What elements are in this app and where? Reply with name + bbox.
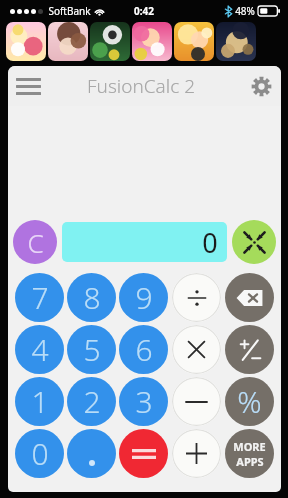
button[interactable]: Plus — [172, 429, 221, 478]
staticText: 4 — [31, 329, 49, 370]
button[interactable]: C — [13, 220, 57, 264]
button[interactable]: Settings — [241, 66, 281, 106]
staticText: APPS — [236, 454, 264, 469]
button[interactable]: 0 — [15, 429, 64, 478]
button[interactable]: App 1 — [6, 22, 46, 61]
button[interactable]: % — [225, 377, 274, 426]
button[interactable]: 4 — [15, 325, 64, 374]
staticText: 48% — [235, 4, 255, 18]
button[interactable]: 6 — [119, 325, 168, 374]
button[interactable]: 8 — [67, 273, 116, 322]
staticText: % — [237, 381, 262, 422]
button[interactable]: Equals — [119, 429, 168, 478]
staticText: MORE — [233, 439, 266, 454]
button[interactable]: App 4 — [132, 22, 172, 61]
button[interactable]: More apps — [225, 429, 274, 478]
staticText: SoftBank — [48, 4, 91, 18]
staticText: 0 — [31, 433, 49, 474]
button[interactable]: 9 — [119, 273, 168, 322]
button[interactable]: Menu — [8, 66, 48, 106]
staticText: FusionCalc 2 — [87, 73, 195, 99]
button[interactable]: . — [67, 429, 116, 478]
staticText: 8 — [83, 277, 101, 318]
button[interactable]: 7 — [15, 273, 64, 322]
button[interactable]: 0 — [62, 222, 227, 262]
staticText: C — [27, 225, 44, 260]
button[interactable]: App 3 — [90, 22, 130, 61]
staticText: 9 — [135, 277, 153, 318]
staticText: 0:42 — [134, 4, 154, 18]
button[interactable]: App 2 — [48, 22, 88, 61]
button[interactable]: App 5 — [174, 22, 214, 61]
button[interactable]: 3 — [119, 377, 168, 426]
button[interactable]: Collapse — [232, 220, 276, 264]
staticText: 5 — [83, 329, 101, 370]
staticText: 0 — [202, 224, 218, 261]
button[interactable]: 5 — [67, 325, 116, 374]
button[interactable]: Plus minus — [225, 325, 274, 374]
staticText: 6 — [135, 329, 153, 370]
button[interactable]: App 6 — [216, 22, 256, 61]
button[interactable]: 1 — [15, 377, 64, 426]
staticText: 2 — [83, 381, 101, 422]
button[interactable]: Minus — [172, 377, 221, 426]
button[interactable]: Divide — [172, 273, 221, 322]
button[interactable]: Multiply — [172, 325, 221, 374]
staticText: 1 — [31, 381, 49, 422]
button[interactable]: 2 — [67, 377, 116, 426]
staticText: 7 — [31, 277, 49, 318]
button[interactable]: Backspace — [225, 273, 274, 322]
staticText: 3 — [135, 381, 153, 422]
